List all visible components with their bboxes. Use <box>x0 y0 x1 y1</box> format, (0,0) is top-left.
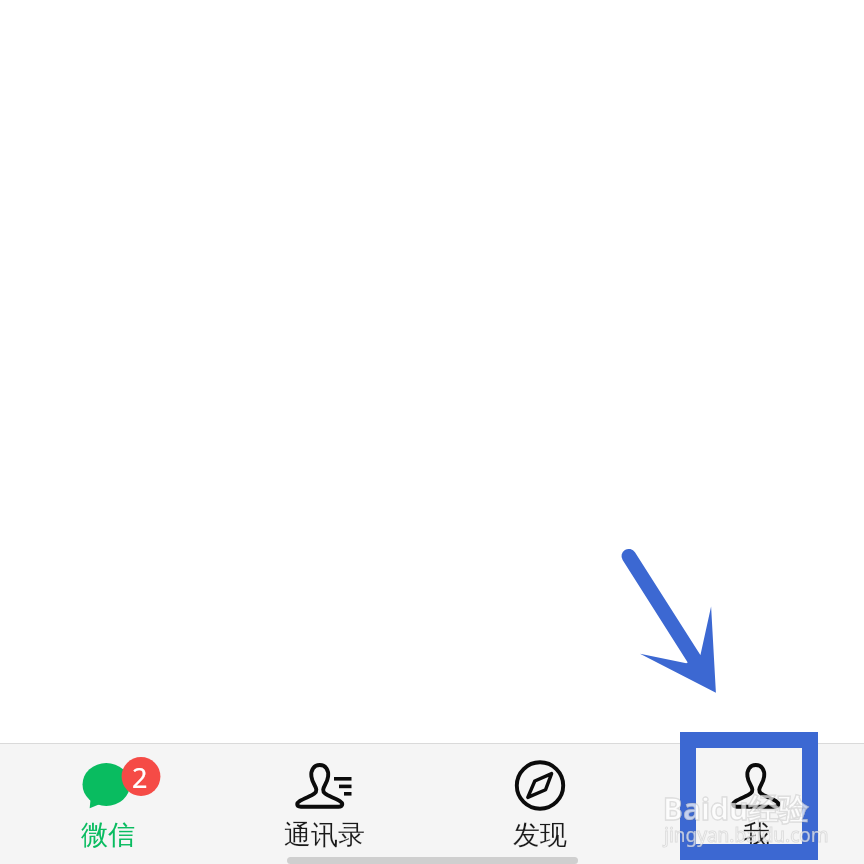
staticText: 我 <box>743 818 770 852</box>
staticText: Baidu经验 <box>663 788 809 829</box>
button[interactable]: Contacts <box>216 743 432 864</box>
staticText: 发现 <box>513 818 567 852</box>
staticText: jingyan.baidu.com <box>664 822 829 848</box>
button[interactable]: Discover <box>432 743 648 864</box>
staticText: 通讯录 <box>284 818 365 852</box>
staticText: jingyan.baidu.com <box>664 822 829 848</box>
staticText: Baidu经验 <box>663 788 809 829</box>
button[interactable]: Me <box>648 743 864 864</box>
button[interactable]: Chats <box>0 743 216 864</box>
staticText: 2 <box>132 759 148 796</box>
staticText: 微信 <box>81 818 135 852</box>
